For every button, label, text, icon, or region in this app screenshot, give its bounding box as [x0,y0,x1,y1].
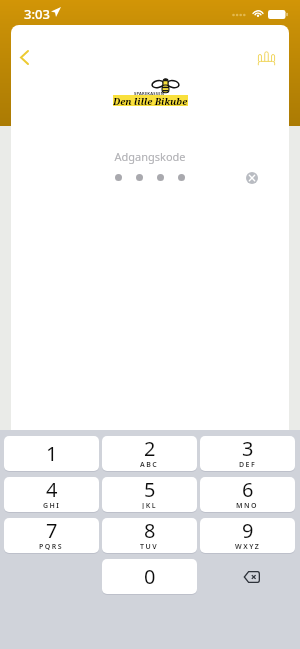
button[interactable]: Backspace [200,559,295,594]
staticText: JKL [142,501,158,509]
button[interactable]: Users [251,42,281,72]
staticText: 1 [46,440,58,467]
staticText: DEF [239,460,257,468]
staticText: 2 [144,435,156,462]
staticText: ABC [140,460,159,468]
staticText: Adgangskode [11,149,289,164]
staticText: 3 [242,435,254,462]
staticText: MNO [236,501,259,509]
staticText: 7 [46,517,58,544]
button[interactable]: 7 [4,518,99,553]
staticText: TUV [140,542,159,550]
button[interactable]: Back [11,42,39,72]
staticText: 8 [144,517,156,544]
button[interactable]: 4 [4,477,99,512]
button[interactable]: 6 [200,477,295,512]
staticText: 5 [144,476,156,503]
staticText: 3:03 [24,5,50,23]
staticText: GHI [43,501,61,509]
staticText: 9 [242,517,254,544]
button[interactable]: 3 [200,436,295,471]
staticText: Den lille Bikube [113,95,188,106]
staticText: PQRS [39,542,64,550]
button[interactable]: 8 [102,518,197,553]
button[interactable]: 2 [102,436,197,471]
staticText: 6 [242,476,254,503]
button[interactable]: 1 [4,436,99,471]
staticText: WXYZ [235,542,261,550]
staticText: 4 [46,476,58,503]
button[interactable]: 5 [102,477,197,512]
button[interactable]: 0 [102,559,197,594]
button[interactable]: Clear [239,165,265,191]
staticText: SPAREKASSEN [134,91,165,96]
button[interactable]: 9 [200,518,295,553]
staticText: 0 [144,563,156,590]
